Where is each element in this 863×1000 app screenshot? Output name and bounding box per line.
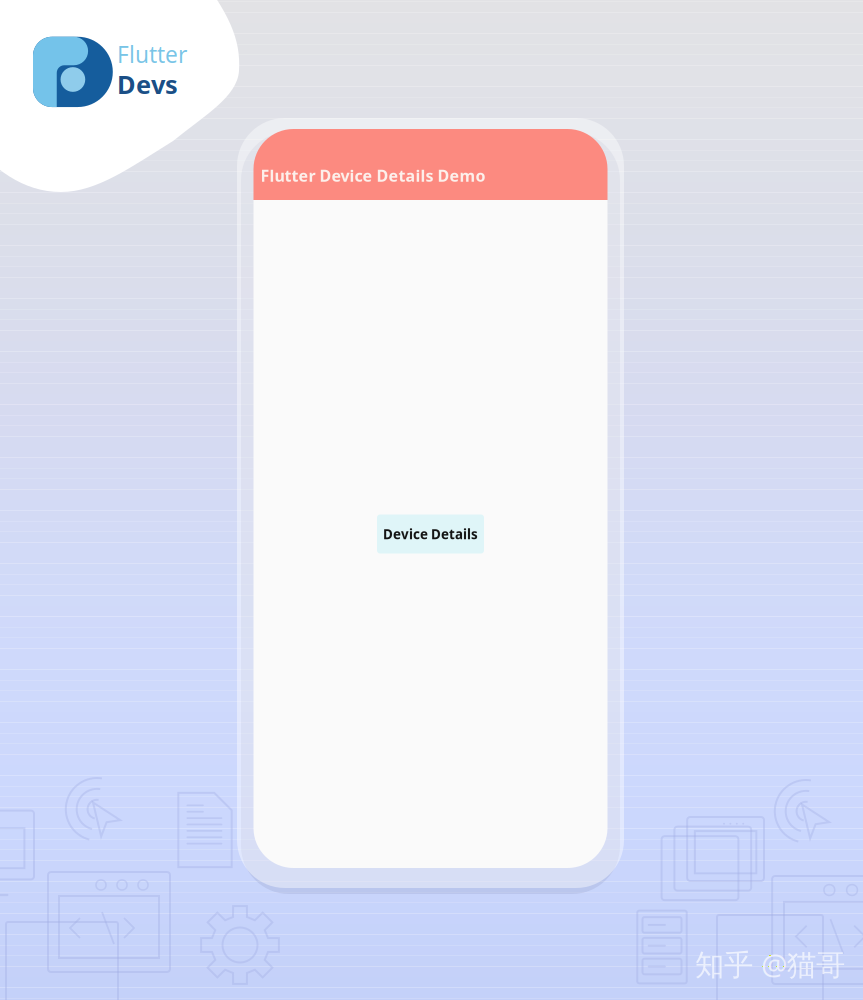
staticText: Flutter [117, 39, 187, 69]
staticText: Device Details [383, 525, 478, 543]
staticText: Flutter Device Details Demo [260, 165, 485, 186]
staticText: 知乎 @猫哥 [695, 944, 845, 983]
staticText: Devs [117, 67, 178, 101]
button[interactable]: Device Details [377, 514, 484, 553]
